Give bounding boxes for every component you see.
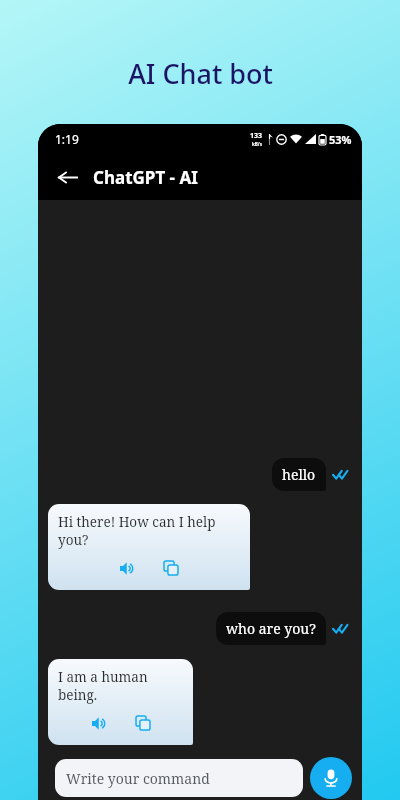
button[interactable]: I am a human being. — [48, 659, 193, 745]
button[interactable]: Speak — [114, 555, 140, 581]
staticText: ChatGPT - AI — [93, 166, 198, 189]
button[interactable]: Copy — [130, 710, 156, 736]
button[interactable]: Hi there! How can I help you? — [48, 504, 250, 590]
button[interactable]: Write your command — [55, 759, 303, 797]
staticText: hello — [282, 465, 316, 484]
button[interactable]: who are you? — [216, 612, 326, 645]
button[interactable]: Speak — [86, 710, 112, 736]
staticText: AI Chat bot — [128, 55, 273, 92]
staticText: 1:19 — [55, 131, 79, 147]
staticText: kB/s — [252, 141, 262, 147]
staticText: I am a human being. — [58, 668, 185, 704]
staticText: Write your command — [66, 769, 210, 788]
staticText: 133 — [250, 131, 263, 141]
button[interactable]: hello — [272, 458, 326, 491]
button[interactable]: Copy — [158, 555, 184, 581]
staticText: Hi there! How can I help you? — [58, 513, 242, 549]
staticText: 53% — [329, 132, 352, 147]
button[interactable]: Back — [50, 160, 84, 194]
staticText: who are you? — [226, 619, 316, 638]
button[interactable]: Voice input — [310, 757, 352, 799]
